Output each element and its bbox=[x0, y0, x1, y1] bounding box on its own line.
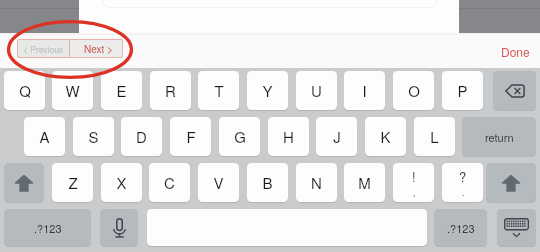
staticText: F bbox=[186, 126, 196, 147]
button[interactable]: K bbox=[365, 117, 406, 156]
staticText: K bbox=[380, 126, 391, 147]
button[interactable]: U bbox=[296, 71, 337, 110]
button[interactable]: Y bbox=[247, 71, 288, 110]
staticText: N bbox=[311, 172, 322, 193]
staticText: Z bbox=[68, 172, 78, 193]
staticText: O bbox=[408, 80, 420, 101]
staticText: Done bbox=[501, 43, 530, 58]
button[interactable]: X bbox=[101, 163, 142, 202]
staticText: W bbox=[65, 80, 80, 101]
button[interactable]: R bbox=[150, 71, 191, 110]
staticText: Q bbox=[19, 80, 31, 101]
staticText: Next > bbox=[84, 42, 113, 56]
button[interactable]: C bbox=[149, 163, 190, 202]
button[interactable]: M bbox=[344, 163, 385, 202]
staticText: I bbox=[362, 80, 367, 101]
button[interactable]: E bbox=[101, 71, 142, 110]
button[interactable]: ? bbox=[442, 163, 483, 202]
button[interactable]: W bbox=[52, 71, 93, 110]
staticText: .?123 bbox=[34, 220, 62, 236]
button[interactable]: V bbox=[198, 163, 239, 202]
button[interactable]: O bbox=[393, 71, 434, 110]
button[interactable]: Shift bbox=[486, 163, 536, 202]
button[interactable]: Hide keyboard bbox=[497, 209, 536, 246]
staticText: E bbox=[116, 80, 127, 101]
button[interactable]: Backspace bbox=[493, 71, 536, 110]
staticText: S bbox=[88, 126, 99, 147]
staticText: V bbox=[213, 172, 224, 193]
staticText: A bbox=[39, 126, 50, 147]
button[interactable]: A bbox=[24, 117, 65, 156]
staticText: B bbox=[262, 172, 273, 193]
staticText: T bbox=[214, 80, 224, 101]
staticText: R bbox=[165, 80, 176, 101]
staticText: L bbox=[430, 126, 439, 147]
staticText: U bbox=[311, 80, 322, 101]
button[interactable]: Z bbox=[52, 163, 93, 202]
staticText: return bbox=[485, 129, 514, 145]
staticText: J bbox=[333, 126, 341, 147]
button[interactable]: .?123 bbox=[4, 209, 91, 246]
staticText: Y bbox=[262, 80, 273, 101]
staticText: , bbox=[413, 186, 416, 199]
staticText: C bbox=[164, 172, 175, 193]
button[interactable]: S bbox=[73, 117, 114, 156]
button[interactable]: I bbox=[344, 71, 385, 110]
button[interactable]: L bbox=[414, 117, 455, 156]
button[interactable]: T bbox=[198, 71, 239, 110]
staticText: M bbox=[358, 172, 371, 193]
staticText: ? bbox=[459, 167, 467, 186]
staticText: .?123 bbox=[447, 220, 475, 236]
button[interactable]: F bbox=[170, 117, 211, 156]
button[interactable]: J bbox=[316, 117, 357, 156]
button[interactable]: N bbox=[296, 163, 337, 202]
button[interactable]: < Previous bbox=[17, 39, 69, 58]
staticText: D bbox=[136, 126, 147, 147]
button[interactable]: Done bbox=[498, 43, 532, 58]
staticText: ! bbox=[412, 167, 416, 186]
button[interactable]: G bbox=[219, 117, 260, 156]
staticText: < Previous bbox=[23, 43, 64, 55]
button[interactable]: D bbox=[121, 117, 162, 156]
button[interactable]: P bbox=[442, 71, 483, 110]
button[interactable]: .?123 bbox=[434, 209, 487, 246]
button[interactable]: Next > bbox=[71, 39, 125, 58]
staticText: X bbox=[116, 172, 127, 193]
button[interactable]: return bbox=[462, 117, 536, 156]
staticText: H bbox=[283, 126, 294, 147]
button[interactable]: H bbox=[268, 117, 309, 156]
button[interactable]: Q bbox=[4, 71, 45, 110]
button[interactable]: B bbox=[247, 163, 288, 202]
staticText: . bbox=[462, 186, 465, 199]
staticText: P bbox=[457, 80, 468, 101]
staticText: G bbox=[234, 126, 246, 147]
button[interactable]: Shift bbox=[4, 163, 44, 202]
button[interactable]: ! bbox=[393, 163, 434, 202]
button[interactable]: Microphone bbox=[100, 209, 138, 246]
